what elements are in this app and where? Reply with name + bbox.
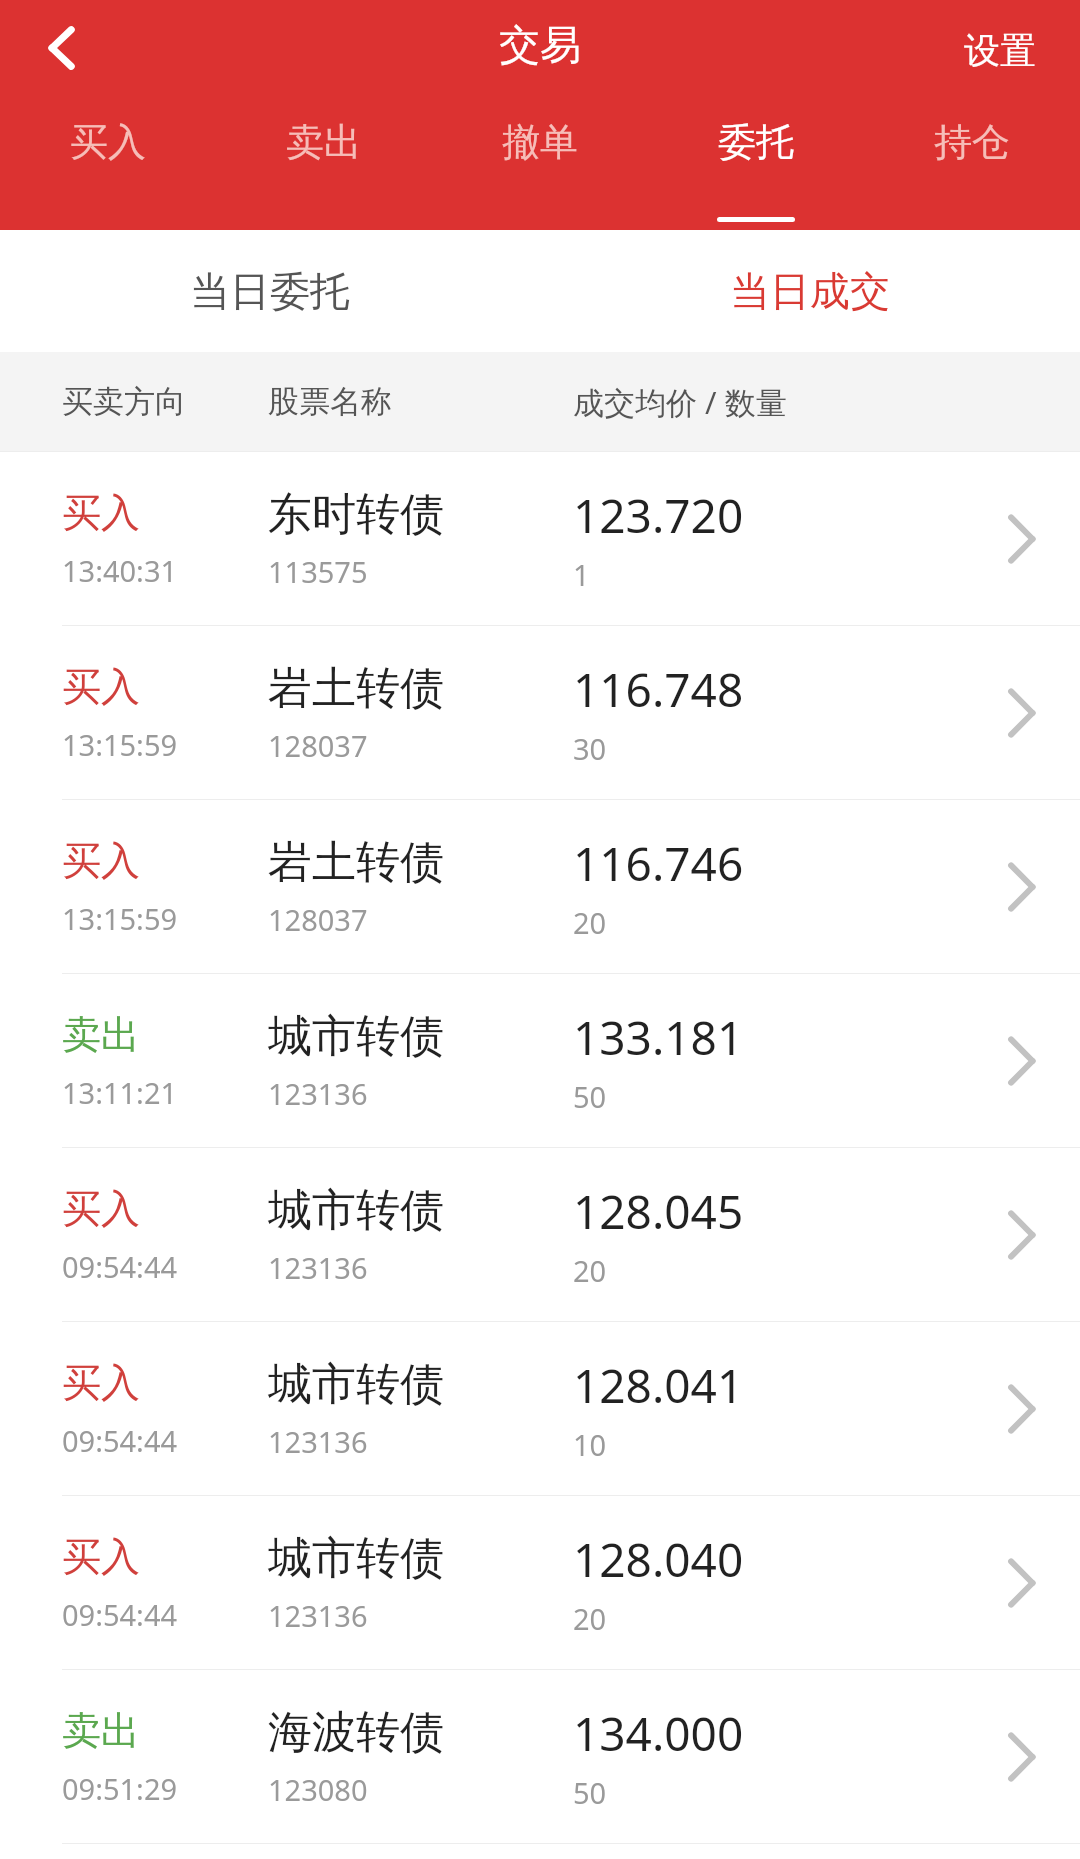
staticText: 128.045: [573, 1180, 744, 1243]
staticText: 委托: [718, 118, 794, 166]
button[interactable]: 卖出: [0, 1670, 1080, 1843]
button[interactable]: 买入: [0, 1496, 1080, 1669]
staticText: 30: [573, 729, 607, 768]
staticText: 20: [573, 903, 607, 942]
staticText: 123136: [268, 1248, 368, 1287]
staticText: 卖出: [62, 1010, 140, 1059]
staticText: 50: [573, 1077, 607, 1116]
staticText: 09:54:44: [62, 1247, 178, 1286]
staticText: 卖出: [286, 118, 362, 166]
staticText: 东时转债: [268, 487, 444, 542]
staticText: 133.181: [573, 1006, 744, 1069]
staticText: 13:15:59: [62, 899, 178, 938]
staticText: 123136: [268, 1074, 368, 1113]
staticText: 09:54:44: [62, 1595, 178, 1634]
staticText: 09:54:44: [62, 1421, 178, 1460]
staticText: 成交均价 / 数量: [573, 381, 787, 423]
staticText: 城市转债: [268, 1009, 444, 1064]
staticText: 买入: [62, 1184, 140, 1233]
staticText: 设置: [964, 28, 1036, 73]
staticText: 20: [573, 1599, 607, 1638]
button[interactable]: 买入: [0, 1148, 1080, 1321]
staticText: 13:15:59: [62, 725, 178, 764]
staticText: 城市转债: [268, 1357, 444, 1412]
staticText: 卖出: [62, 1706, 140, 1755]
staticText: 1: [573, 555, 590, 594]
button[interactable]: Back: [8, 0, 118, 96]
staticText: 128037: [268, 900, 368, 939]
staticText: 50: [573, 1773, 607, 1812]
staticText: 当日成交: [730, 266, 890, 316]
staticText: 20: [573, 1251, 607, 1290]
staticText: 116.748: [573, 658, 744, 721]
staticText: 128.041: [573, 1354, 744, 1417]
staticText: 10: [573, 1425, 607, 1464]
button[interactable]: 撤单: [432, 100, 648, 230]
staticText: 海波转债: [268, 1705, 444, 1760]
staticText: 撤单: [502, 118, 578, 166]
staticText: 买入: [62, 1358, 140, 1407]
staticText: 123080: [268, 1770, 368, 1809]
staticText: 128037: [268, 726, 368, 765]
staticText: 116.746: [573, 832, 744, 895]
button[interactable]: 持仓: [864, 100, 1080, 230]
staticText: 交易: [499, 20, 581, 72]
staticText: 113575: [268, 552, 368, 591]
staticText: 买入: [62, 488, 140, 537]
staticText: 13:40:31: [62, 551, 178, 590]
button[interactable]: 买入: [0, 100, 216, 230]
button[interactable]: 卖出: [216, 100, 432, 230]
button[interactable]: 当日成交: [540, 230, 1080, 352]
button[interactable]: 委托: [648, 100, 864, 230]
button[interactable]: 卖出: [0, 974, 1080, 1147]
staticText: 岩土转债: [268, 835, 444, 890]
staticText: 123136: [268, 1596, 368, 1635]
staticText: 123.720: [573, 484, 744, 547]
staticText: 买卖方向: [62, 382, 186, 421]
button[interactable]: 买入: [0, 626, 1080, 799]
staticText: 买入: [62, 1532, 140, 1581]
staticText: 123136: [268, 1422, 368, 1461]
staticText: 买入: [62, 836, 140, 885]
staticText: 股票名称: [268, 382, 392, 421]
button[interactable]: 买入: [0, 1322, 1080, 1495]
staticText: 城市转债: [268, 1531, 444, 1586]
button[interactable]: 设置: [920, 4, 1080, 96]
staticText: 持仓: [934, 118, 1010, 166]
staticText: 当日委托: [190, 266, 350, 316]
staticText: 买入: [62, 662, 140, 711]
button[interactable]: 当日委托: [0, 230, 540, 352]
staticText: 买入: [70, 118, 146, 166]
button[interactable]: 买入: [0, 800, 1080, 973]
staticText: 城市转债: [268, 1183, 444, 1238]
staticText: 岩土转债: [268, 661, 444, 716]
button[interactable]: 买入: [0, 452, 1080, 625]
staticText: 13:11:21: [62, 1073, 178, 1112]
staticText: 09:51:29: [62, 1769, 178, 1808]
staticText: 134.000: [573, 1702, 744, 1765]
staticText: 128.040: [573, 1528, 744, 1591]
